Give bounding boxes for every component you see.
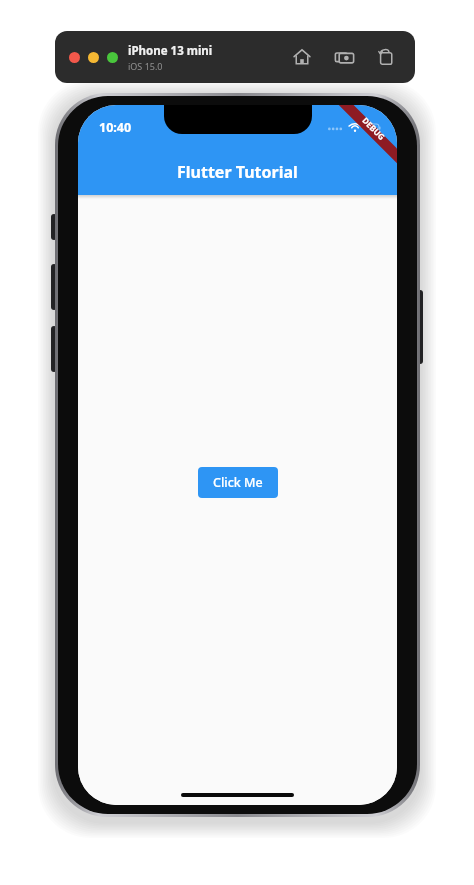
staticText: Flutter Tutorial — [177, 161, 298, 183]
button[interactable]: Screenshot — [331, 44, 357, 70]
staticText: 10:40 — [99, 119, 132, 136]
staticText: DEBUG — [360, 115, 388, 142]
button[interactable]: Click Me — [198, 467, 278, 498]
button[interactable]: Home — [289, 44, 315, 70]
button[interactable]: Rotate — [373, 44, 399, 70]
staticText: Click Me — [213, 474, 263, 491]
staticText: iPhone 13 mini — [128, 43, 213, 59]
staticText: iOS 15.0 — [128, 60, 163, 72]
